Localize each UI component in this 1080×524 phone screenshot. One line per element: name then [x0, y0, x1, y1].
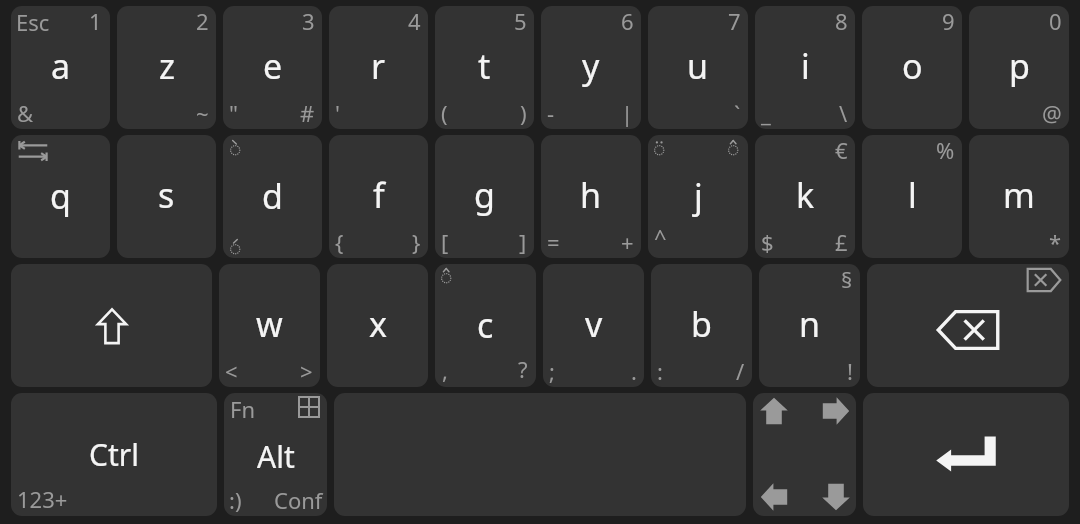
staticText: d — [262, 173, 283, 219]
staticText: r — [371, 43, 386, 89]
button[interactable]: x — [327, 264, 428, 387]
staticText: l — [908, 172, 917, 218]
staticText: j — [694, 173, 703, 219]
staticText: _ — [761, 98, 771, 128]
staticText: ; — [549, 356, 555, 386]
staticText: < — [225, 356, 238, 386]
button[interactable]: o — [862, 6, 962, 129]
staticText: b — [691, 301, 712, 347]
button[interactable]: c — [435, 264, 536, 387]
button[interactable]: t — [435, 6, 534, 129]
staticText: c — [477, 302, 494, 348]
staticText: 6 — [621, 6, 634, 36]
staticText: \ — [839, 98, 848, 128]
staticText: i — [801, 43, 810, 89]
staticText: ) — [520, 98, 527, 128]
staticText: ! — [847, 356, 853, 386]
staticText: 4 — [408, 6, 421, 36]
button[interactable]: w — [219, 264, 320, 387]
staticText: s — [158, 172, 175, 218]
staticText: @ — [1042, 98, 1062, 128]
staticText: % — [936, 135, 955, 165]
button[interactable]: Shift — [11, 264, 212, 387]
button[interactable]: v — [543, 264, 644, 387]
staticText: 2 — [196, 6, 209, 36]
staticText: o — [902, 43, 923, 89]
staticText: # — [300, 98, 315, 128]
staticText: m — [1003, 172, 1035, 218]
button[interactable]: y — [541, 6, 641, 129]
button[interactable]: Backspace — [867, 264, 1069, 387]
staticText: : — [657, 356, 663, 386]
staticText: Conf — [274, 485, 323, 515]
button[interactable]: b — [651, 264, 752, 387]
staticText: ] — [519, 227, 527, 257]
staticText: n — [799, 301, 821, 347]
button[interactable]: n — [759, 264, 860, 387]
staticText: . — [631, 356, 637, 386]
staticText: x — [369, 301, 387, 347]
staticText: § — [841, 264, 853, 294]
staticText: ' — [335, 98, 340, 128]
button[interactable]: g — [435, 135, 534, 258]
staticText: h — [580, 172, 602, 218]
button[interactable]: k — [755, 135, 855, 258]
staticText: " — [229, 98, 238, 128]
staticText: 1 — [89, 6, 102, 36]
staticText: v — [585, 301, 603, 347]
staticText: | — [621, 98, 634, 128]
button[interactable]: a — [11, 6, 110, 129]
button[interactable]: q — [11, 135, 110, 258]
button[interactable]: j — [648, 135, 748, 258]
button[interactable]: d — [223, 135, 322, 258]
staticText: } — [412, 227, 421, 257]
staticText: > — [300, 356, 313, 386]
button[interactable]: s — [117, 135, 216, 258]
button[interactable]: Alt — [224, 393, 327, 516]
staticText: g — [474, 172, 495, 218]
button[interactable]: Arrow keys — [753, 393, 856, 516]
button[interactable]: l — [862, 135, 962, 258]
staticText: 3 — [302, 6, 315, 36]
staticText: Alt — [257, 436, 295, 477]
staticText: w — [256, 301, 283, 347]
button[interactable]: z — [117, 6, 216, 129]
staticText: a — [51, 43, 71, 89]
button[interactable]: Ctrl — [11, 393, 217, 516]
staticText: k — [796, 172, 815, 218]
staticText: € — [835, 135, 848, 165]
button[interactable]: p — [969, 6, 1069, 129]
staticText: u — [687, 43, 709, 89]
button[interactable]: r — [329, 6, 428, 129]
staticText: = — [547, 227, 560, 257]
staticText: 7 — [728, 6, 741, 36]
staticText: :) — [229, 485, 242, 515]
staticText: p — [1009, 43, 1030, 89]
staticText: { — [335, 227, 344, 257]
staticText: + — [621, 227, 634, 257]
staticText: & — [17, 98, 34, 128]
staticText: ` — [734, 98, 741, 128]
button[interactable]: e — [223, 6, 322, 129]
staticText: Fn — [230, 394, 256, 424]
staticText: z — [159, 43, 175, 89]
button[interactable]: Enter — [863, 393, 1069, 516]
staticText: Esc — [16, 7, 50, 37]
staticText: 5 — [514, 6, 527, 36]
button[interactable]: h — [541, 135, 641, 258]
staticText: 123+ — [17, 484, 68, 514]
staticText: 9 — [942, 6, 955, 36]
staticText: t — [478, 43, 491, 89]
staticText: - — [547, 98, 555, 128]
staticText: 8 — [835, 6, 848, 36]
button[interactable]: i — [755, 6, 855, 129]
button[interactable]: u — [648, 6, 748, 129]
button[interactable]: f — [329, 135, 428, 258]
staticText: e — [263, 43, 283, 89]
button[interactable]: m — [969, 135, 1069, 258]
staticText: Ctrl — [89, 434, 139, 475]
staticText: 0 — [1049, 6, 1062, 36]
staticText: * — [1049, 227, 1062, 257]
staticText: f — [373, 172, 385, 218]
